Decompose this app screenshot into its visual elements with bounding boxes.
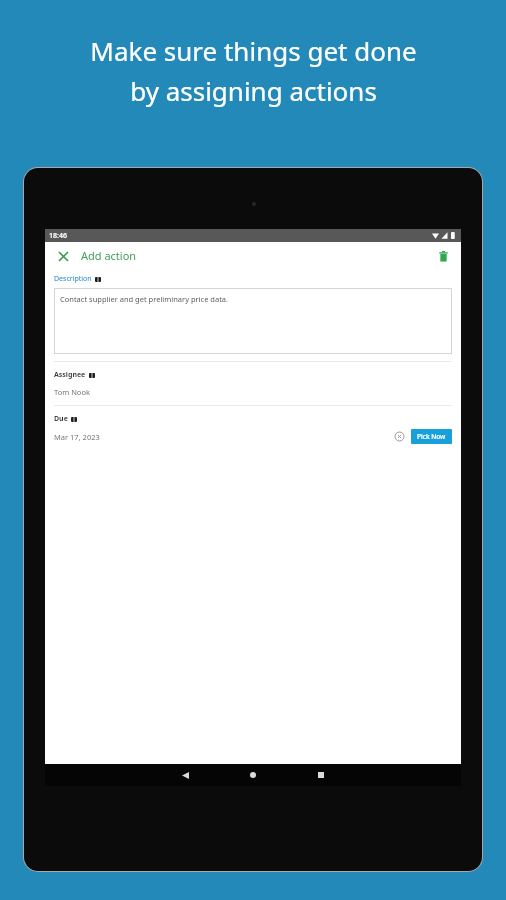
- staticText: by assigning actions: [130, 73, 377, 108]
- button[interactable]: Clear date: [393, 430, 406, 443]
- staticText: Tom Nook: [54, 387, 90, 397]
- button[interactable]: Delete: [434, 247, 452, 265]
- button[interactable]: Close: [54, 247, 72, 265]
- button[interactable]: Pick Now: [411, 429, 452, 444]
- staticText: Pick Now: [417, 432, 446, 441]
- button[interactable]: Recent apps: [287, 764, 355, 786]
- staticText: Due: [54, 414, 68, 424]
- button[interactable]: Contact supplier and get preliminary pri…: [54, 288, 452, 354]
- staticText: Assignee: [54, 370, 86, 380]
- staticText: Contact supplier and get preliminary pri…: [60, 294, 229, 304]
- staticText: Make sure things get done: [90, 33, 417, 68]
- button[interactable]: Tom Nook: [45, 387, 461, 397]
- staticText: Description: [54, 274, 92, 284]
- button[interactable]: Home: [219, 764, 287, 786]
- staticText: Mar 17, 2023: [54, 432, 100, 442]
- staticText: 18:46: [49, 231, 67, 241]
- staticText: Add action: [81, 248, 137, 263]
- button[interactable]: Back: [151, 764, 219, 786]
